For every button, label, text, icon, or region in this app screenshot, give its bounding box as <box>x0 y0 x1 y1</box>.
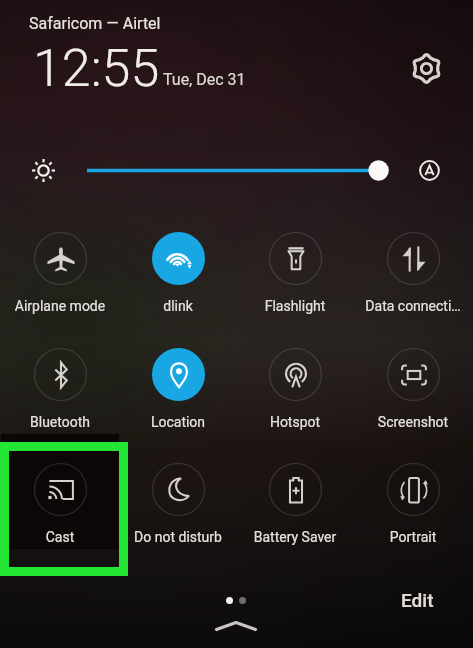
button[interactable]: Hotspot <box>236 319 354 434</box>
staticText: Data connecti… <box>357 298 469 314</box>
button[interactable]: Do not disturb <box>119 434 237 549</box>
button[interactable]: Collapse panel <box>206 614 266 638</box>
staticText: Hotspot <box>239 414 351 430</box>
button[interactable]: Brightness <box>27 154 60 187</box>
button[interactable]: Data connecti… <box>354 203 472 318</box>
button[interactable]: Edit <box>386 583 448 617</box>
button[interactable]: Bluetooth <box>1 319 119 434</box>
staticText: Portrait <box>357 529 469 545</box>
staticText: Location <box>122 414 234 430</box>
button[interactable]: Battery Saver <box>236 434 354 549</box>
staticText: Safaricom — Airtel <box>29 14 161 33</box>
button[interactable]: Portrait <box>354 434 472 549</box>
staticText: dlink <box>122 298 234 314</box>
button[interactable]: Settings <box>404 46 448 90</box>
button[interactable]: Auto brightness <box>412 153 446 187</box>
button[interactable]: Flashlight <box>236 203 354 318</box>
button[interactable]: Location <box>119 319 237 434</box>
staticText: Airplane mode <box>4 298 116 314</box>
staticText: Tue, Dec 31 <box>163 70 246 89</box>
button[interactable]: dlink <box>119 203 237 318</box>
button[interactable]: Brightness slider <box>80 156 396 185</box>
staticText: Cast <box>4 529 116 545</box>
staticText: Battery Saver <box>239 529 351 545</box>
staticText: Screenshot <box>357 414 469 430</box>
staticText: Bluetooth <box>4 414 116 430</box>
button[interactable]: Screenshot <box>354 319 472 434</box>
staticText: Edit <box>401 589 434 611</box>
staticText: Flashlight <box>239 298 351 314</box>
staticText: 12:55 <box>33 38 160 99</box>
staticText: Do not disturb <box>122 529 234 545</box>
button[interactable]: Cast <box>1 434 119 549</box>
button[interactable]: Airplane mode <box>1 203 119 318</box>
